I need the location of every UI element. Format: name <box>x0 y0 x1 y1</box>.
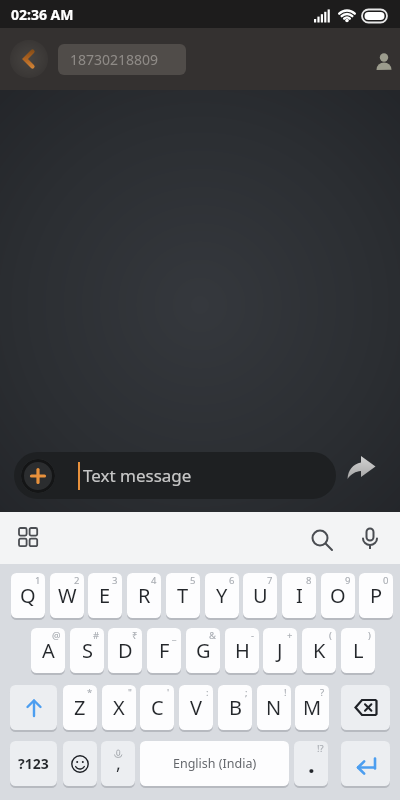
button[interactable] <box>10 685 57 730</box>
button[interactable]: C <box>140 685 174 730</box>
button[interactable]: 18730218809 <box>58 44 186 75</box>
button[interactable]: P <box>359 573 393 618</box>
button[interactable]: ?123 <box>10 741 57 786</box>
staticText: 2 <box>74 574 80 587</box>
button[interactable]: A <box>31 628 65 673</box>
staticText: ( <box>329 629 332 642</box>
button[interactable]: X <box>102 685 136 730</box>
button[interactable]: N <box>257 685 291 730</box>
staticText: !? <box>317 742 324 755</box>
button[interactable]: J <box>263 628 297 673</box>
staticText: - <box>251 629 255 642</box>
staticText: ; <box>245 686 248 699</box>
button[interactable]: U <box>243 573 277 618</box>
button[interactable]: English (India) <box>140 741 289 786</box>
button[interactable]: Z <box>63 685 97 730</box>
staticText: E <box>99 582 111 609</box>
staticText: . <box>308 747 315 780</box>
staticText: L <box>353 637 364 664</box>
button[interactable] <box>21 459 55 493</box>
staticText: 5 <box>190 574 196 587</box>
staticText: English (India) <box>173 755 257 772</box>
staticText: , <box>116 751 121 776</box>
button[interactable]: V <box>179 685 213 730</box>
staticText: G <box>196 637 211 664</box>
staticText: @ <box>52 629 61 642</box>
button[interactable]: Text message <box>14 452 336 499</box>
button[interactable] <box>10 40 48 78</box>
button[interactable] <box>341 741 390 786</box>
staticText: 18730218809 <box>70 50 159 69</box>
staticText: ₹ <box>132 629 138 642</box>
button[interactable] <box>370 50 396 76</box>
staticText: 8 <box>306 574 312 587</box>
staticText: Q <box>20 582 36 609</box>
staticText: Z <box>74 694 86 721</box>
button[interactable] <box>341 685 390 730</box>
staticText: R <box>138 582 151 609</box>
button[interactable]: T <box>166 573 200 618</box>
staticText: D <box>118 637 133 664</box>
button[interactable]: K <box>302 628 336 673</box>
staticText: K <box>313 637 326 664</box>
button[interactable]: , <box>101 741 135 786</box>
staticText: " <box>128 686 132 699</box>
staticText: T <box>177 582 189 609</box>
staticText: N <box>266 694 282 721</box>
staticText: ! <box>284 686 287 699</box>
staticText: 7 <box>267 574 273 587</box>
button[interactable]: D <box>108 628 142 673</box>
staticText: U <box>253 582 268 609</box>
staticText: ? <box>320 686 325 699</box>
button[interactable]: R <box>127 573 161 618</box>
staticText: J <box>277 637 283 664</box>
button[interactable] <box>63 741 97 786</box>
staticText: ' <box>167 686 170 699</box>
button[interactable]: Q <box>11 573 45 618</box>
button[interactable] <box>344 454 384 494</box>
button[interactable]: B <box>218 685 252 730</box>
staticText: W <box>58 582 77 609</box>
button[interactable] <box>18 527 38 547</box>
button[interactable]: F <box>147 628 181 673</box>
staticText: 9 <box>345 574 351 587</box>
staticText: I <box>296 582 303 609</box>
staticText: X <box>113 694 125 721</box>
staticText: : <box>206 686 209 699</box>
staticText: & <box>209 629 216 642</box>
staticText: Text message <box>83 464 192 487</box>
staticText: 6 <box>229 574 235 587</box>
button[interactable]: H <box>225 628 259 673</box>
staticText: M <box>303 694 322 721</box>
staticText: H <box>235 637 250 664</box>
staticText: V <box>190 694 202 721</box>
button[interactable]: S <box>70 628 104 673</box>
staticText: C <box>151 694 164 721</box>
staticText: 3 <box>112 574 118 587</box>
staticText: 02:36 AM <box>11 5 74 24</box>
button[interactable]: W <box>50 573 84 618</box>
button[interactable]: G <box>186 628 220 673</box>
staticText: O <box>330 582 346 609</box>
staticText: Y <box>216 582 228 609</box>
button[interactable]: M <box>295 685 329 730</box>
button[interactable]: . <box>294 741 328 786</box>
button[interactable]: E <box>88 573 122 618</box>
staticText: 4 <box>151 574 157 587</box>
button[interactable]: L <box>341 628 375 673</box>
staticText: P <box>370 582 383 609</box>
staticText: 1 <box>35 574 41 587</box>
staticText: # <box>93 629 100 642</box>
button[interactable]: Y <box>205 573 239 618</box>
staticText: * <box>87 686 93 699</box>
staticText: B <box>229 694 242 721</box>
staticText: F <box>159 637 170 664</box>
button[interactable]: O <box>321 573 355 618</box>
staticText: ) <box>368 629 371 642</box>
button[interactable]: I <box>282 573 316 618</box>
staticText: + <box>287 629 293 642</box>
staticText: _ <box>172 629 177 642</box>
staticText: S <box>82 637 93 664</box>
button[interactable] <box>358 527 382 551</box>
button[interactable] <box>310 528 334 552</box>
